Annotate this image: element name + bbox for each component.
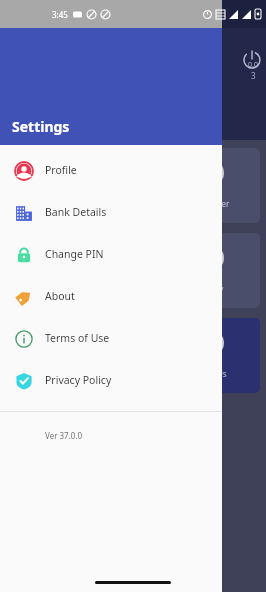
button[interactable]: Terms of Use (0, 317, 222, 359)
staticText: Pay (210, 283, 224, 294)
staticText: nsfer (210, 198, 230, 209)
staticText: Change PIN (45, 247, 104, 261)
staticText: Ver 37.0.0 (45, 430, 83, 441)
staticText: 0.0 (248, 60, 258, 70)
button[interactable]: Bank Details (0, 191, 222, 233)
button[interactable]: Change PIN (0, 233, 222, 275)
staticText: Bank Details (45, 205, 107, 219)
staticText: Terms of Use (45, 331, 110, 345)
staticText: 3 (251, 70, 256, 81)
button[interactable]: About (0, 275, 222, 317)
staticText: Privacy Policy (45, 373, 112, 387)
button[interactable]: Privacy Policy (0, 359, 222, 401)
staticText: Settings (12, 117, 70, 136)
staticText: Profile (45, 163, 77, 177)
button[interactable]: Profile (0, 149, 222, 191)
staticText: h Us (210, 368, 227, 379)
staticText: 3:45 (52, 9, 68, 20)
staticText: About (45, 289, 75, 303)
